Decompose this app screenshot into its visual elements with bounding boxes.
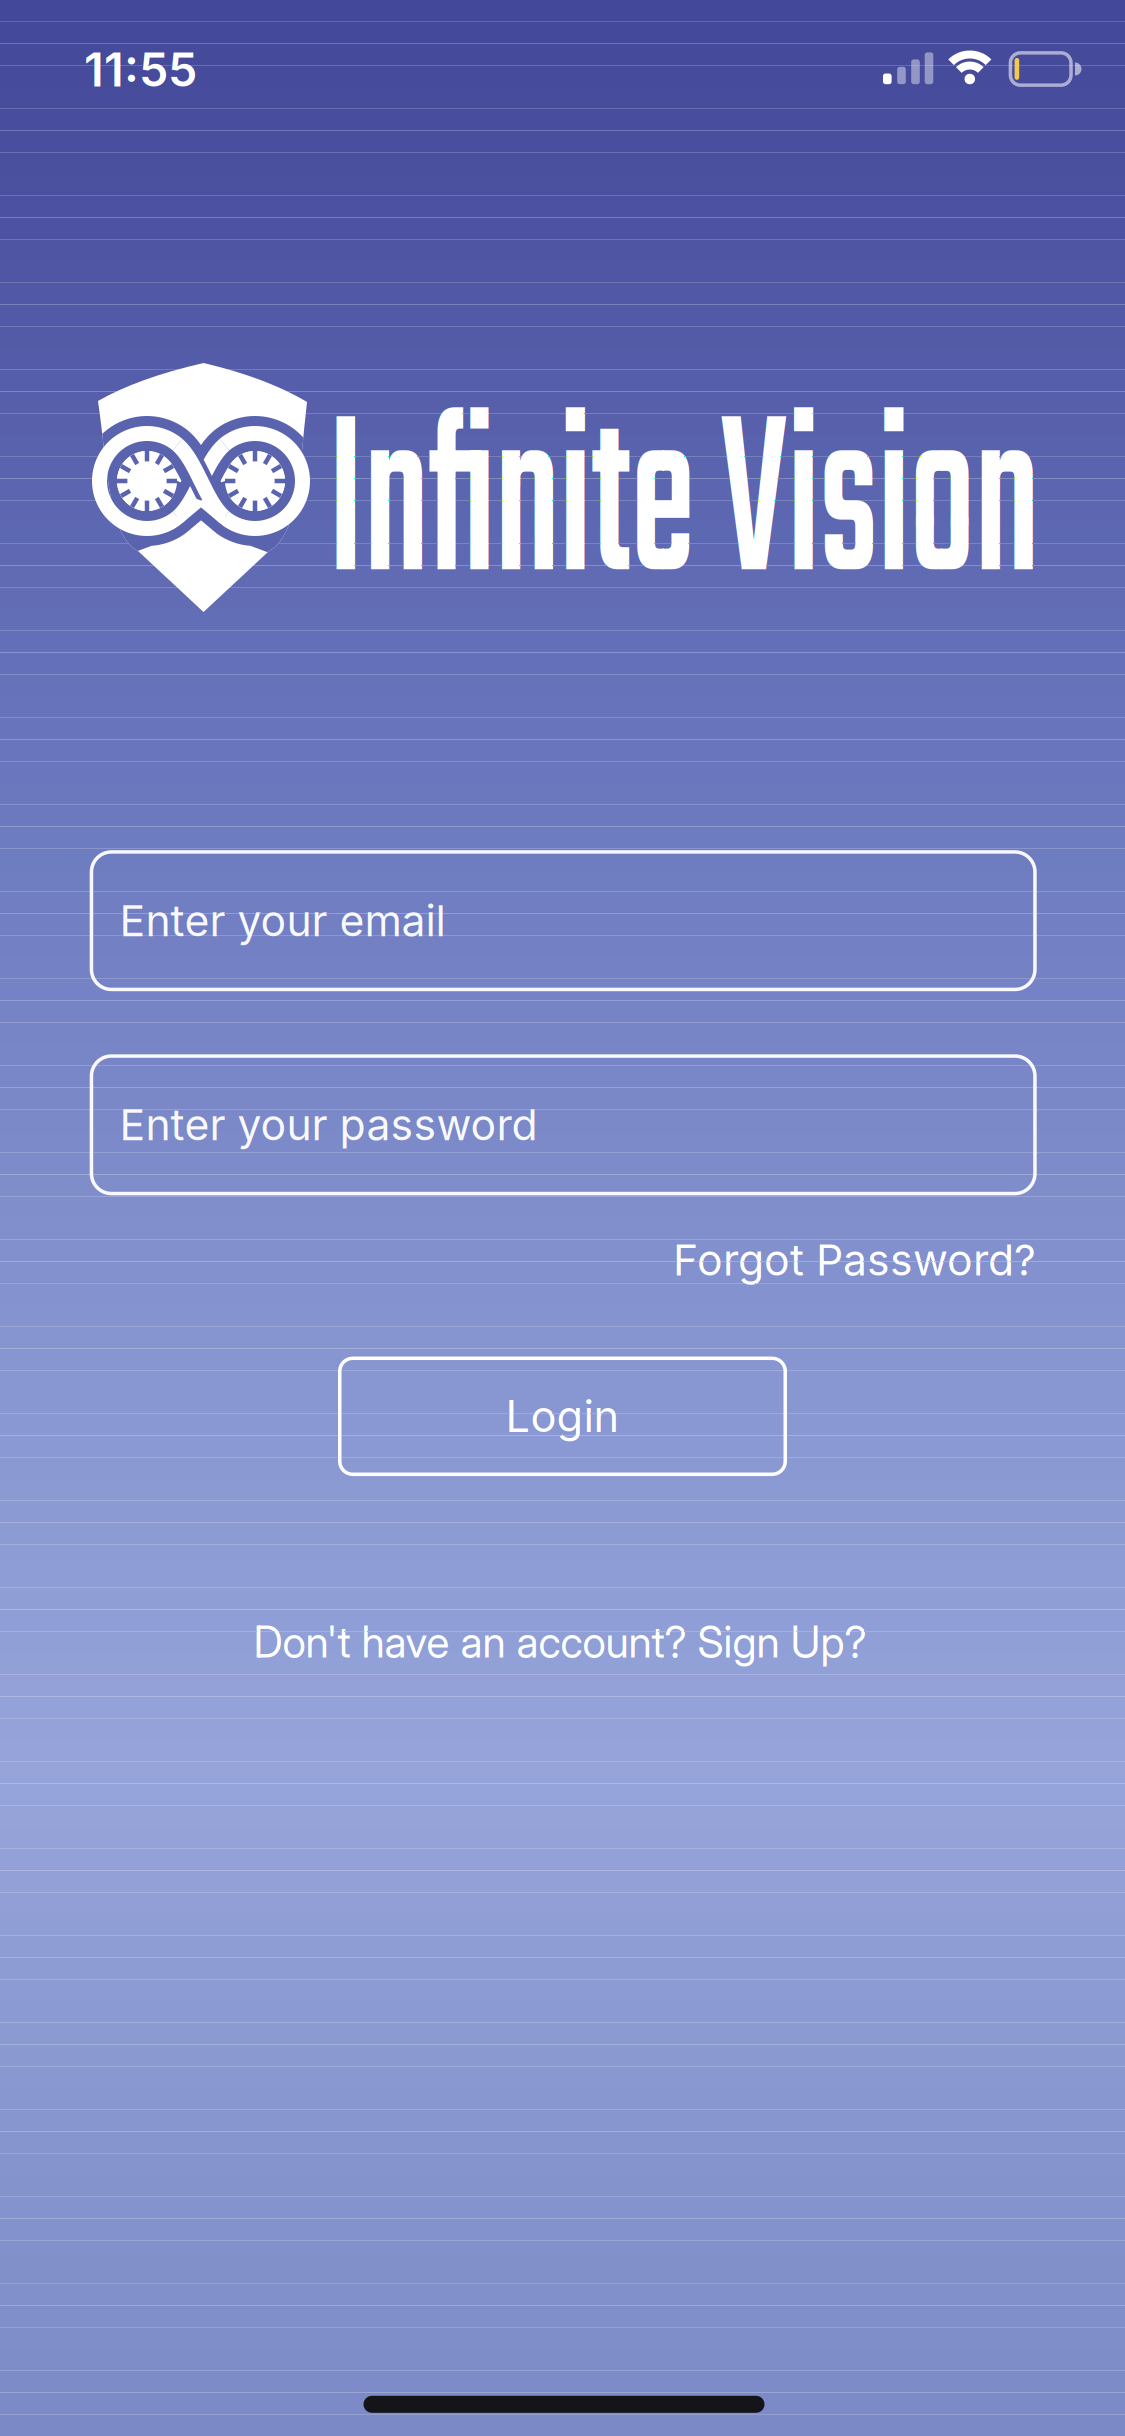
button[interactable]: Enter your password: [91, 1056, 1035, 1193]
button[interactable]: Login: [340, 1358, 785, 1474]
staticText: Forgot Password?: [673, 1234, 1036, 1286]
button[interactable]: Forgot Password?: [436, 1234, 1036, 1286]
staticText: Enter your password: [119, 1099, 537, 1151]
button[interactable]: Don't have an account? Sign Up?: [253, 1616, 866, 1668]
button[interactable]: Enter your email: [91, 852, 1035, 989]
staticText: Infinite Vision: [152, 338, 1125, 684]
staticText: Enter your email: [119, 895, 445, 946]
staticText: 11:55: [84, 41, 197, 98]
staticText: Login: [505, 1390, 619, 1442]
staticText: Don't have an account? Sign Up?: [253, 1616, 866, 1668]
